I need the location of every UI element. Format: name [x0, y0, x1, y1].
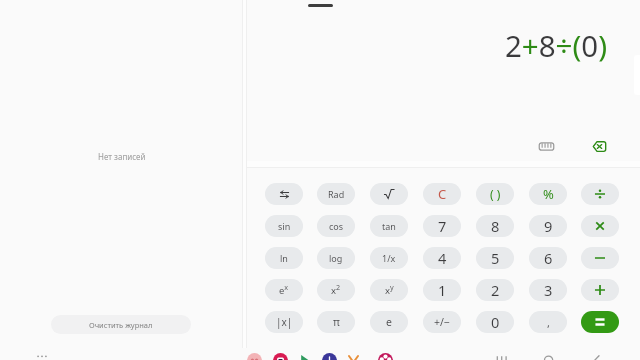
staticText: ( ) [490, 186, 501, 202]
staticText: 7 [438, 216, 447, 236]
button[interactable]: Plus [581, 279, 619, 301]
button[interactable]: 8 [476, 215, 514, 237]
button[interactable]: 5 [476, 247, 514, 269]
button[interactable]: Home [540, 352, 560, 360]
button[interactable]: 0 [476, 311, 514, 333]
button[interactable]: More [33, 350, 51, 360]
button[interactable]: Rad [317, 183, 355, 205]
staticText: Rad [328, 188, 345, 200]
button[interactable]: Square root [370, 183, 408, 205]
button[interactable]: π [317, 311, 355, 333]
staticText: 3 [544, 280, 553, 300]
button[interactable]: App [322, 353, 337, 360]
staticText: xy [385, 282, 394, 297]
button[interactable]: Unit converter [536, 136, 557, 157]
button[interactable]: 1 [423, 279, 461, 301]
staticText: 0 [491, 312, 500, 332]
button[interactable]: Очистить журнал [51, 315, 191, 334]
staticText: ln [280, 252, 288, 264]
button[interactable]: ln [265, 247, 303, 269]
button[interactable]: Multiply [581, 215, 619, 237]
button[interactable]: Swap [265, 183, 303, 205]
staticText: e [386, 315, 392, 329]
staticText: 1/x [382, 252, 396, 264]
staticText: C [438, 185, 447, 203]
button[interactable]: ex [265, 279, 303, 301]
staticText: π [333, 315, 340, 329]
staticText: 6 [544, 248, 553, 268]
staticText: tan [382, 220, 396, 232]
staticText: Нет записей [98, 151, 146, 162]
staticText: 5 [491, 248, 500, 268]
button[interactable]: log [317, 247, 355, 269]
button[interactable]: 6 [529, 247, 567, 269]
button[interactable]: % [529, 183, 567, 205]
button[interactable]: App [378, 353, 393, 360]
staticText: 8 [491, 216, 500, 236]
button[interactable]: Back [588, 352, 608, 360]
button[interactable]: +/− [423, 311, 461, 333]
button[interactable]: tan [370, 215, 408, 237]
button[interactable]: sin [265, 215, 303, 237]
staticText: cos [329, 220, 344, 232]
button[interactable]: 9 [529, 215, 567, 237]
button[interactable]: App [273, 353, 288, 360]
button[interactable]: Parentheses [476, 183, 514, 205]
button[interactable]: App [247, 353, 262, 360]
staticText: x2 [331, 282, 341, 297]
staticText: 2+8÷(0) [505, 25, 608, 65]
button[interactable]: Divide [581, 183, 619, 205]
button[interactable]: 1/x [370, 247, 408, 269]
button[interactable]: 7 [423, 215, 461, 237]
staticText: ex [279, 282, 289, 297]
button[interactable]: xy [370, 279, 408, 301]
staticText: 9 [544, 216, 553, 236]
button[interactable]: 4 [423, 247, 461, 269]
staticText: 2 [491, 280, 500, 300]
button[interactable]: C [423, 183, 461, 205]
staticText: |x| [276, 315, 293, 329]
button[interactable]: Minus [581, 247, 619, 269]
staticText: Очистить журнал [89, 320, 153, 330]
staticText: +/− [434, 315, 450, 329]
staticText: % [543, 185, 554, 203]
button[interactable]: e [370, 311, 408, 333]
button[interactable]: App [346, 353, 361, 360]
button[interactable]: Recents [492, 352, 512, 360]
button[interactable]: |x| [265, 311, 303, 333]
staticText: log [329, 252, 343, 264]
button[interactable]: App [297, 353, 312, 360]
staticText: sin [278, 220, 291, 232]
button[interactable]: 3 [529, 279, 567, 301]
button[interactable]: 2 [476, 279, 514, 301]
button[interactable]: x2 [317, 279, 355, 301]
staticText: 1 [438, 280, 447, 300]
button[interactable]: Backspace [589, 136, 610, 157]
staticText: , [547, 315, 550, 330]
staticText: 4 [438, 248, 447, 268]
button[interactable]: , [529, 311, 567, 333]
button[interactable]: Equals [581, 311, 619, 333]
button[interactable]: cos [317, 215, 355, 237]
